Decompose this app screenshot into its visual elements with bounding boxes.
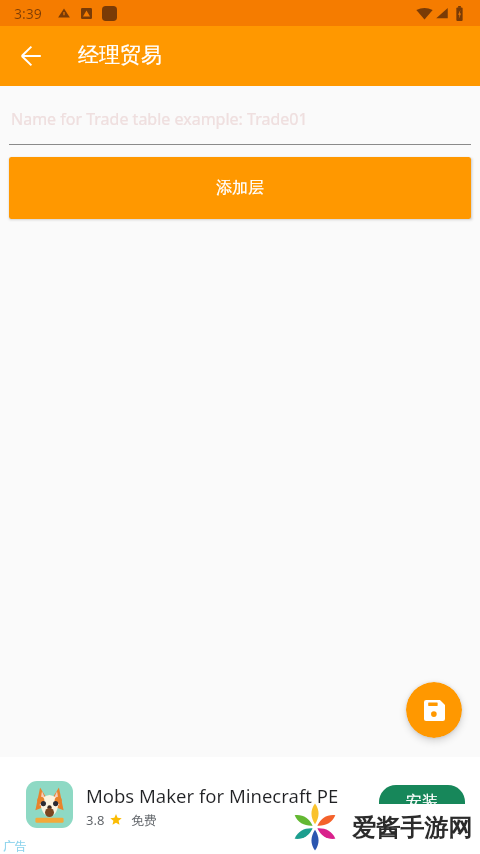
button[interactable]: Name for Trade table example: Trade01	[0, 86, 480, 145]
button[interactable]: Install	[379, 785, 465, 804]
staticText: 安装	[406, 792, 438, 804]
staticText: Mobs Maker for Minecraft PE	[86, 783, 339, 808]
button[interactable]: Mobs Maker for Minecraft PE	[0, 757, 480, 854]
button[interactable]: 添加层	[9, 157, 471, 219]
staticText: 广告	[3, 838, 27, 853]
staticText: 3.8	[86, 811, 105, 829]
staticText: 3:39	[14, 4, 42, 23]
button[interactable]: Save	[406, 682, 462, 738]
staticText: Name for Trade table example: Trade01	[11, 108, 308, 130]
staticText: 添加层	[216, 178, 264, 198]
staticText: 爱酱手游网	[352, 813, 472, 843]
button[interactable]: Back	[9, 34, 53, 78]
staticText: 经理贸易	[78, 42, 162, 68]
staticText: 免费	[131, 812, 157, 828]
